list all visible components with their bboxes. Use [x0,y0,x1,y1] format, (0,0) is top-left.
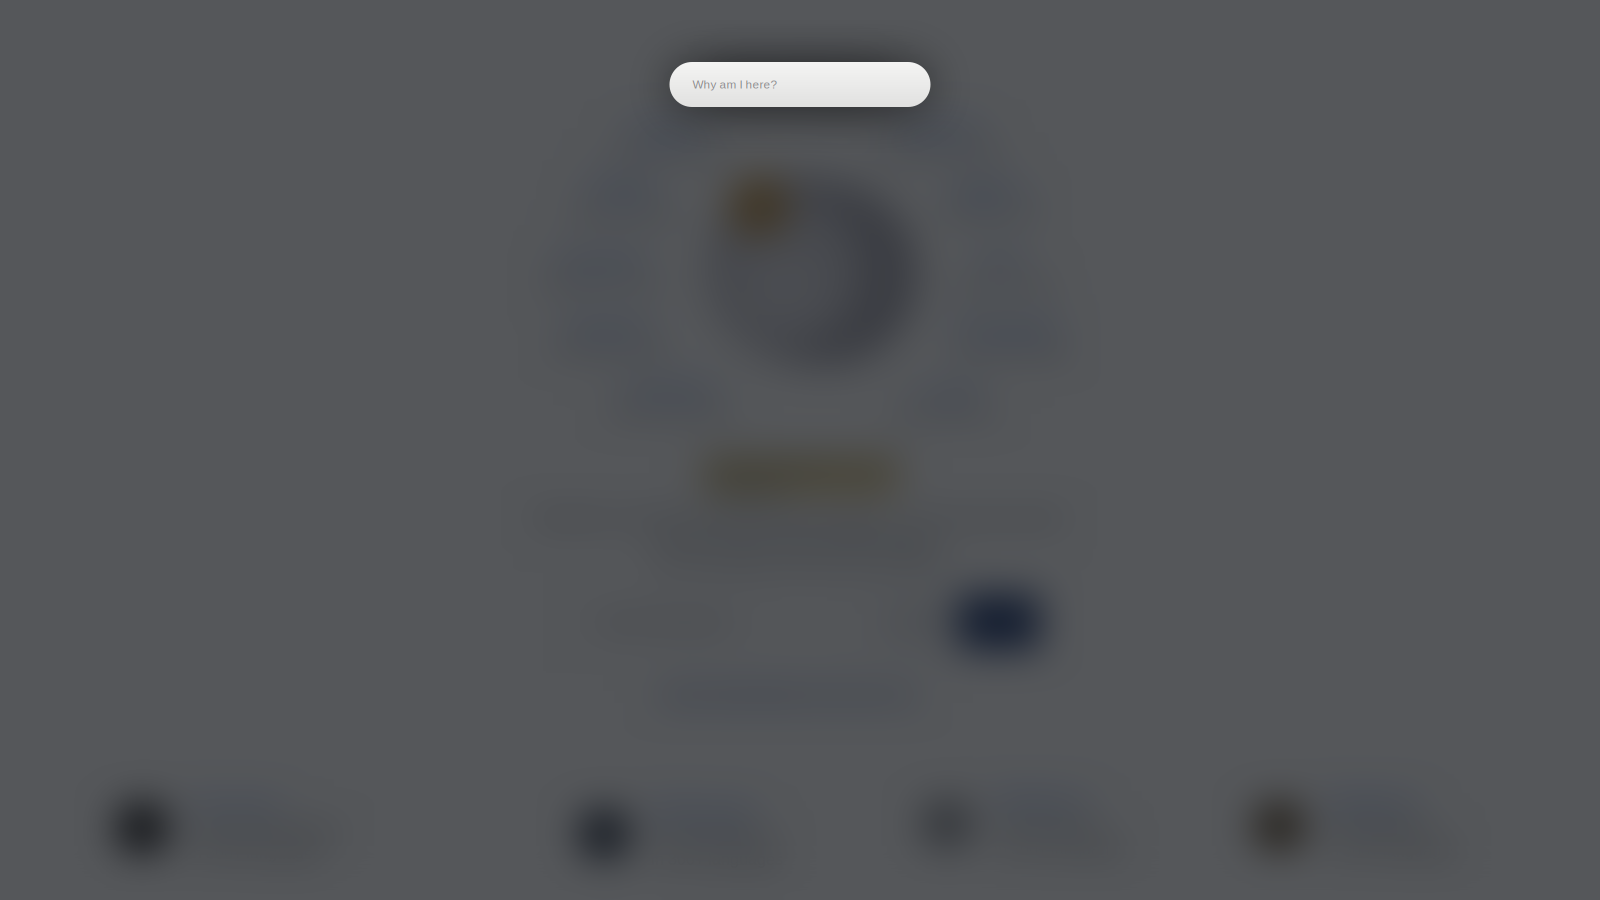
button[interactable]: Why am I here? [669,62,930,107]
staticText: Why am I here? [692,78,777,91]
staticText: Español [895,116,978,141]
staticText: WIKIPEDIA [718,59,882,95]
staticText: English [630,117,705,142]
staticText: The Free Encyclopedia [733,96,867,111]
staticText: Read Wikipedia in your language [708,454,894,496]
